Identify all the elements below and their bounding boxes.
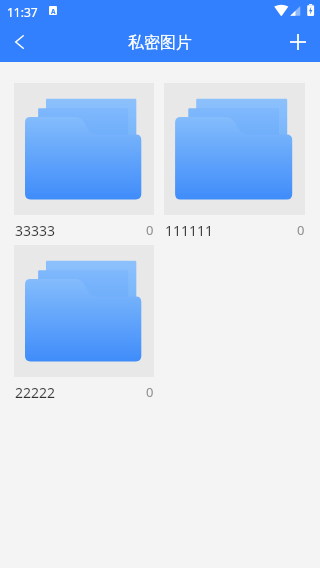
button[interactable]: 22222 — [14, 245, 154, 407]
staticText: 11:37 — [7, 4, 38, 20]
button[interactable]: Back — [0, 22, 38, 62]
staticText: 111111 — [165, 221, 214, 240]
staticText: 0 — [146, 221, 154, 239]
staticText: 33333 — [15, 221, 56, 240]
staticText: 22222 — [15, 383, 56, 402]
staticText: 私密图片 — [128, 33, 192, 53]
staticText: A — [51, 7, 56, 15]
staticText: 0 — [146, 383, 154, 401]
button[interactable]: 33333 — [14, 83, 154, 245]
staticText: 0 — [297, 221, 305, 239]
button[interactable]: 111111 — [164, 83, 305, 245]
button[interactable]: Add — [278, 22, 318, 62]
